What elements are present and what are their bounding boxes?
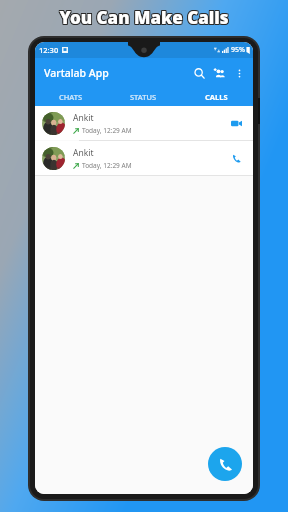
staticText: Today, 12:29 AM [82, 126, 132, 135]
staticText: STATUS [130, 92, 157, 102]
staticText: You Can Make Calls [59, 7, 229, 30]
staticText: You Can Make Calls [58, 5, 228, 28]
staticText: CALLS [205, 92, 228, 102]
staticText: You Can Make Calls [59, 5, 229, 28]
button[interactable]: Search [189, 63, 209, 83]
button[interactable]: More options [229, 63, 249, 83]
button[interactable]: Add contact [209, 63, 229, 83]
button[interactable]: Ankit [35, 141, 253, 175]
button[interactable]: Ankit [35, 106, 253, 140]
staticText: You Can Make Calls [59, 6, 229, 29]
staticText: Ankit [73, 147, 94, 159]
staticText: 12:30 [39, 45, 59, 55]
button[interactable]: CALLS [180, 88, 253, 106]
staticText: You Can Make Calls [58, 7, 228, 30]
button[interactable]: STATUS [107, 88, 180, 106]
staticText: Vartalab App [44, 66, 109, 80]
staticText: You Can Make Calls [60, 7, 230, 30]
staticText: Ankit [73, 112, 94, 124]
button[interactable]: Video call [226, 113, 246, 133]
staticText: You Can Make Calls [60, 6, 230, 29]
staticText: CHATS [59, 92, 83, 102]
staticText: You Can Make Calls [60, 5, 230, 28]
button[interactable]: CHATS [35, 88, 107, 106]
button[interactable]: New call [208, 447, 242, 481]
button[interactable]: Voice call [226, 148, 246, 168]
staticText: 95% [231, 45, 245, 55]
staticText: You Can Make Calls [58, 6, 228, 29]
staticText: Today, 12:29 AM [82, 161, 132, 170]
